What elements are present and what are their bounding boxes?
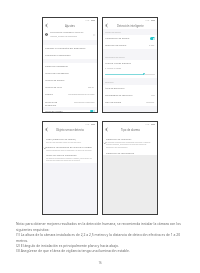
staticText: Nota: para obtener mejores resultados en… <box>16 221 183 232</box>
staticText: Ajustes de tiempo <box>45 79 65 82</box>
staticText: (2) El ángulo de instalación es principa… <box>16 243 119 248</box>
staticText: (1) La altura de la cámara instalada es … <box>16 232 183 243</box>
staticText: grabación <box>45 103 57 106</box>
staticText: Sonido ambiental para la segunda o el fi… <box>46 149 92 151</box>
button[interactable]: Back <box>44 23 49 28</box>
staticText: Compartir el dispositivo <box>45 54 71 57</box>
staticText: Esta es una detalles sobre un tipo de fo… <box>46 141 82 143</box>
button[interactable]: Ajustes de tiempo <box>43 77 97 84</box>
staticText: Intervalo de alarma <box>105 44 127 47</box>
staticText: Cuenta <box>45 93 53 96</box>
staticText: 2. Ajustar el rango <box>105 67 122 70</box>
staticText: Modo de alarma inteligente <box>46 153 77 156</box>
staticText: Sensibilidad de alarma <box>105 56 125 59</box>
staticText: 11:26 <box>145 123 150 125</box>
staticText: 11:26 <box>85 19 90 21</box>
staticText: Modo de cifrado <box>45 110 63 112</box>
button[interactable]: Detección de humanos <box>103 136 157 150</box>
button[interactable]: Toggle on <box>150 37 155 40</box>
staticText: 11:26 <box>85 123 90 125</box>
button[interactable]: Modo de cifrado <box>43 110 97 112</box>
staticText: Sensibilidad de detección <box>105 94 133 97</box>
button[interactable]: Back <box>104 23 109 28</box>
button[interactable]: Notificación de alarma <box>103 35 157 42</box>
staticText: 11:26 <box>145 19 150 21</box>
staticText: 16 <box>0 261 200 265</box>
button[interactable]: Back <box>44 127 49 132</box>
staticText: (3) Asegúrese de que el área de vigilanc… <box>16 248 130 253</box>
staticText: Detección <box>105 81 114 84</box>
staticText: Objeto sensor detecta <box>56 128 84 132</box>
staticText: Detección de humanos <box>106 137 132 140</box>
button[interactable]: Servicio de <box>43 98 97 107</box>
staticText: Alta <box>151 94 155 97</box>
button[interactable]: Cebo (Detección de objeto) <box>43 136 97 144</box>
staticText: Tipo de alarma <box>121 128 140 132</box>
staticText: wifi-01 <box>88 86 95 89</box>
staticText: Ajustes de Wi-Fi <box>45 86 62 89</box>
button[interactable]: Ajustes de Wi-Fi <box>43 84 97 91</box>
button[interactable]: Compartir el dispositivo <box>43 52 97 59</box>
staticText: Detectar movimiento de alarma o imagen <box>46 145 92 148</box>
button[interactable]: Cambiar la contraseña del dispositivo <box>43 45 97 52</box>
staticText: Notificación de alarma <box>105 37 130 40</box>
staticText: Detección inteligente <box>45 65 68 68</box>
button[interactable]: Modo de alarma inteligente <box>43 152 97 163</box>
staticText: El modelo de detección inteligente recon… <box>106 141 154 149</box>
button[interactable]: Detectar movimiento de alarma o imagen <box>43 144 97 152</box>
staticText: Nombre, modelo de dispositivo <box>50 35 78 38</box>
staticText: Humano <box>146 101 155 104</box>
staticText: Detección inteligente <box>117 24 144 28</box>
staticText: Almacenamiento en la nube <box>68 93 95 96</box>
button[interactable]: Detección inteligente <box>43 63 97 70</box>
staticText: Ajustes <box>65 24 75 28</box>
staticText: VWLVWG5ML-WTB09GHN-MTTC-HC <box>50 31 84 34</box>
staticText: Alarma. Falsas alarmas <box>105 61 131 64</box>
button[interactable]: Área de detección <box>103 85 157 92</box>
staticText: Ajuste de la grabación <box>45 72 69 75</box>
staticText: Suscripción caducada <box>74 101 95 104</box>
staticText: Cambiar la contraseña del dispositivo <box>45 47 86 50</box>
button[interactable]: Toggle on <box>90 110 95 112</box>
staticText: Detección de movimiento <box>106 151 135 154</box>
staticText: Se detecta movimiento humano y objeto, p… <box>46 157 94 162</box>
button[interactable]: Ajuste de la grabación <box>43 70 97 77</box>
button[interactable]: VWLVWG5ML-WTB09GHN-MTTC-HC <box>43 29 97 40</box>
staticText: Servicio de <box>45 100 58 103</box>
staticText: Área de detección <box>105 87 125 90</box>
staticText: Cebo (Detección de objeto) <box>46 137 76 140</box>
button[interactable]: Detección de movimiento <box>103 150 157 155</box>
button[interactable]: Tipo de alarma <box>103 99 157 106</box>
button[interactable]: Sensibilidad de detección <box>103 92 157 99</box>
button[interactable]: Intervalo de alarma <box>103 42 157 49</box>
button[interactable]: Back <box>104 127 109 132</box>
staticText: Ajustes de alarma <box>105 31 121 34</box>
staticText: Tipo de alarma <box>105 101 122 104</box>
staticText: 5 min <box>149 44 155 47</box>
button[interactable]: Cuenta <box>43 91 97 98</box>
